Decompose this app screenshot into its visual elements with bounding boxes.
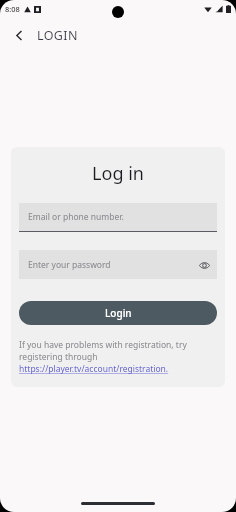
button[interactable]: Login: [19, 301, 217, 325]
staticText: Enter your password: [28, 259, 111, 271]
staticText: LOGIN: [37, 27, 78, 44]
staticText: 8:08: [5, 4, 20, 14]
button[interactable]: Back: [6, 22, 32, 48]
staticText: Login: [105, 306, 132, 320]
button[interactable]: https://player.tv/account/registration.: [19, 363, 169, 375]
staticText: If you have problems with registration, …: [19, 339, 217, 363]
staticText: Email or phone number.: [28, 211, 124, 223]
button[interactable]: Email or phone number.: [19, 203, 217, 232]
button[interactable]: Enter your password: [19, 250, 217, 279]
staticText: Log in: [19, 161, 217, 186]
button[interactable]: Show password: [197, 258, 211, 272]
